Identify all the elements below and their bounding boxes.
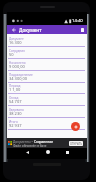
- button[interactable]: Подразделение: [7, 70, 87, 82]
- button[interactable]: ОТКРЫТЬ: [69, 141, 83, 146]
- staticText: 34 300,00: [9, 76, 28, 81]
- button[interactable]: Recent apps: [61, 148, 74, 156]
- button[interactable]: Оклад: [7, 93, 87, 105]
- staticText: 92 937: [9, 123, 22, 128]
- button[interactable]: Начислено: [7, 58, 87, 70]
- staticText: Оклад: [9, 96, 19, 100]
- staticText: Файл обновлён в базе: [13, 144, 47, 148]
- staticText: Начислено: [9, 61, 26, 65]
- staticText: 54 707: [9, 99, 22, 104]
- staticText: Удержано: [9, 108, 24, 112]
- staticText: Подразделение: [9, 73, 33, 77]
- button[interactable]: Период: [7, 81, 87, 93]
- button[interactable]: Home: [41, 148, 54, 156]
- staticText: 9 000,00: [9, 64, 25, 69]
- staticText: 1 1,00: [9, 87, 21, 92]
- button[interactable]: Итого: [7, 117, 87, 129]
- button[interactable]: Back: [9, 25, 19, 35]
- staticText: 50: [9, 52, 14, 57]
- button[interactable]: Удержано: [7, 105, 87, 117]
- button[interactable]: Save: [77, 25, 87, 35]
- staticText: Документы •: [13, 140, 34, 144]
- staticText: Документ: [19, 27, 42, 33]
- button[interactable]: Back: [21, 148, 34, 156]
- staticText: Период: [9, 84, 21, 88]
- button[interactable]: Документ: [7, 34, 87, 46]
- staticText: ОТКРЫТЬ: [70, 142, 83, 146]
- staticText: Сотрудник: [9, 49, 25, 53]
- staticText: 16 300: [9, 40, 22, 45]
- staticText: 14:40: [72, 18, 83, 24]
- staticText: 38 230: [9, 111, 22, 116]
- staticText: Сохранение: [34, 140, 53, 144]
- staticText: Итого: [9, 120, 18, 124]
- staticText: Документ: [9, 37, 24, 41]
- button[interactable]: Сотрудник: [7, 46, 87, 58]
- button[interactable]: Add: [71, 122, 80, 131]
